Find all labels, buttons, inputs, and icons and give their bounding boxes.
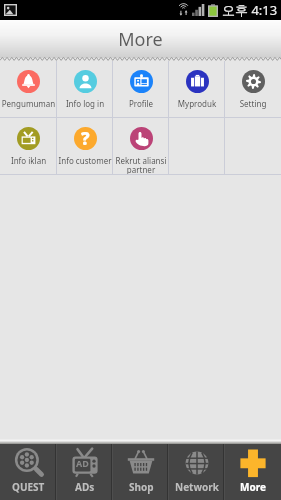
button[interactable]: Setting: [225, 61, 281, 117]
button[interactable]: Info log in: [57, 61, 113, 117]
other: Screenshot captured: [4, 4, 17, 16]
button[interactable]: More: [225, 444, 281, 500]
button[interactable]: Myproduk: [169, 61, 225, 117]
button[interactable]: Network: [169, 444, 225, 500]
button[interactable]: ?: [57, 118, 113, 174]
button[interactable]: QUEST: [0, 444, 57, 500]
staticText: Info customer: [57, 155, 113, 166]
staticText: More: [0, 27, 281, 52]
staticText: Setting: [225, 98, 281, 109]
staticText: Pengumuman: [0, 98, 57, 109]
staticText: AD: [76, 457, 89, 469]
staticText: Rekrut aliansi partner: [113, 155, 169, 176]
staticText: Myproduk: [169, 98, 225, 109]
button[interactable]: Profile: [113, 61, 169, 117]
button[interactable]: Info iklan: [0, 118, 57, 174]
button[interactable]: Pengumuman: [0, 61, 57, 117]
button[interactable]: Rekrut aliansi partner: [113, 118, 169, 174]
staticText: Info iklan: [0, 155, 57, 166]
staticText: ?: [81, 127, 90, 150]
staticText: More: [240, 480, 266, 494]
staticText: Info log in: [57, 98, 113, 109]
staticText: Profile: [113, 98, 169, 109]
button[interactable]: Shop: [113, 444, 169, 500]
staticText: QUEST: [12, 480, 45, 494]
staticText: 오후 4:13: [222, 1, 278, 19]
staticText: Network: [175, 480, 219, 494]
button[interactable]: ADs: [57, 444, 113, 500]
staticText: ADs: [75, 480, 95, 494]
staticText: Shop: [129, 480, 154, 494]
